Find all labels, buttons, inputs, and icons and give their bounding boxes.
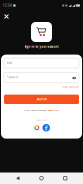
staticText: Forgot password? — [62, 85, 79, 88]
button[interactable]: Forgot password? — [62, 85, 79, 88]
staticText: Email — [6, 61, 12, 65]
button[interactable]: Continue with Facebook — [42, 124, 50, 132]
staticText: SIGN IN — [36, 97, 46, 101]
button[interactable]: Home — [35, 173, 47, 183]
staticText: 12:34 — [3, 4, 12, 7]
button[interactable]: Back — [12, 173, 24, 183]
staticText: Don't have an account? — [24, 108, 47, 112]
staticText: Password — [6, 75, 18, 79]
staticText: Sign in to your account — [24, 45, 58, 49]
staticText: Login with — [36, 118, 47, 121]
button[interactable]: SIGN IN — [4, 95, 79, 104]
button[interactable]: Close — [1, 11, 12, 21]
staticText: Sign up — [48, 108, 59, 112]
button[interactable]: Continue with Google — [33, 124, 41, 132]
button[interactable]: Sign up — [48, 108, 59, 112]
button[interactable]: Recent apps — [59, 173, 71, 183]
